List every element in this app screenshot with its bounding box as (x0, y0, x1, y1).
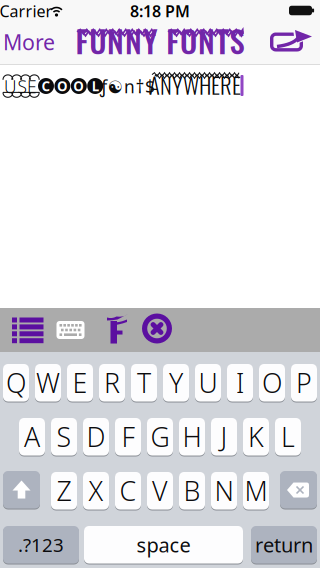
button[interactable]: Delete (280, 471, 317, 510)
staticText: Carrier (0, 0, 52, 22)
staticText: K (248, 419, 264, 454)
button[interactable]: A (19, 417, 45, 456)
staticText: I (236, 365, 244, 400)
button[interactable]: T (131, 363, 157, 402)
staticText: R (104, 365, 120, 400)
staticText: return (255, 531, 313, 558)
staticText: Z (56, 473, 71, 508)
staticText: S (56, 419, 71, 454)
button[interactable]: Z (51, 471, 77, 510)
button[interactable]: More (0, 25, 58, 59)
staticText: V (152, 473, 168, 508)
button[interactable]: F (115, 417, 141, 456)
staticText: O (57, 77, 68, 95)
staticText: C (119, 473, 136, 508)
button[interactable]: P (291, 363, 317, 402)
button[interactable]: Close (135, 306, 178, 350)
button[interactable]: Q (3, 363, 29, 402)
button[interactable]: Keyboard (49, 308, 92, 352)
staticText: O (73, 77, 84, 95)
staticText: M (244, 473, 267, 508)
staticText: O (262, 365, 282, 400)
staticText: W (36, 365, 60, 400)
staticText: ƒ☯n†$ (100, 75, 155, 98)
staticText: 8:18 PM (130, 0, 190, 22)
staticText: F (121, 419, 134, 454)
staticText: More (3, 28, 55, 56)
button[interactable]: S (51, 417, 77, 456)
button[interactable]: I (227, 363, 253, 402)
button[interactable]: .?123 (3, 525, 79, 564)
staticText: E (72, 365, 87, 400)
button[interactable]: space (84, 525, 243, 564)
button[interactable]: K (243, 417, 269, 456)
button[interactable]: N (211, 471, 237, 510)
button[interactable]: E (67, 363, 93, 402)
staticText: ANYWHERE (149, 68, 241, 101)
button[interactable]: Shift (3, 471, 40, 510)
staticText: Y (169, 365, 183, 400)
staticText: B (183, 473, 200, 508)
button[interactable]: O (259, 363, 285, 402)
staticText: U (198, 365, 217, 400)
staticText: .?123 (18, 532, 64, 557)
staticText: J (220, 419, 227, 454)
button[interactable]: V (147, 471, 173, 510)
staticText: P (296, 365, 312, 400)
staticText: X (88, 473, 103, 508)
button[interactable]: R (99, 363, 125, 402)
staticText: N (214, 473, 233, 508)
staticText: space (136, 531, 190, 558)
button[interactable]: Font list (6, 308, 49, 352)
button[interactable]: C (115, 471, 141, 510)
button[interactable]: Fancy fonts (92, 308, 135, 352)
button[interactable]: Y (163, 363, 189, 402)
staticText: T (137, 365, 151, 400)
staticText: H (182, 419, 201, 454)
button[interactable]: J (211, 417, 237, 456)
button[interactable]: G (147, 417, 173, 456)
button[interactable]: L (275, 417, 301, 456)
staticText: USE (4, 75, 37, 98)
button[interactable]: B (179, 471, 205, 510)
staticText: L (92, 77, 99, 95)
button[interactable]: D (83, 417, 109, 456)
staticText: G (150, 419, 169, 454)
button[interactable]: U (195, 363, 221, 402)
staticText: D (86, 419, 105, 454)
button[interactable]: Share (269, 28, 311, 54)
staticText: C (41, 77, 50, 95)
staticText: FUNNY FONTS (75, 18, 244, 63)
staticText: Q (6, 365, 26, 400)
staticText: A (24, 419, 40, 454)
button[interactable]: return (251, 525, 317, 564)
button[interactable]: X (83, 471, 109, 510)
staticText: L (281, 419, 295, 454)
button[interactable]: H (179, 417, 205, 456)
button[interactable]: W (35, 363, 61, 402)
button[interactable]: M (243, 471, 269, 510)
